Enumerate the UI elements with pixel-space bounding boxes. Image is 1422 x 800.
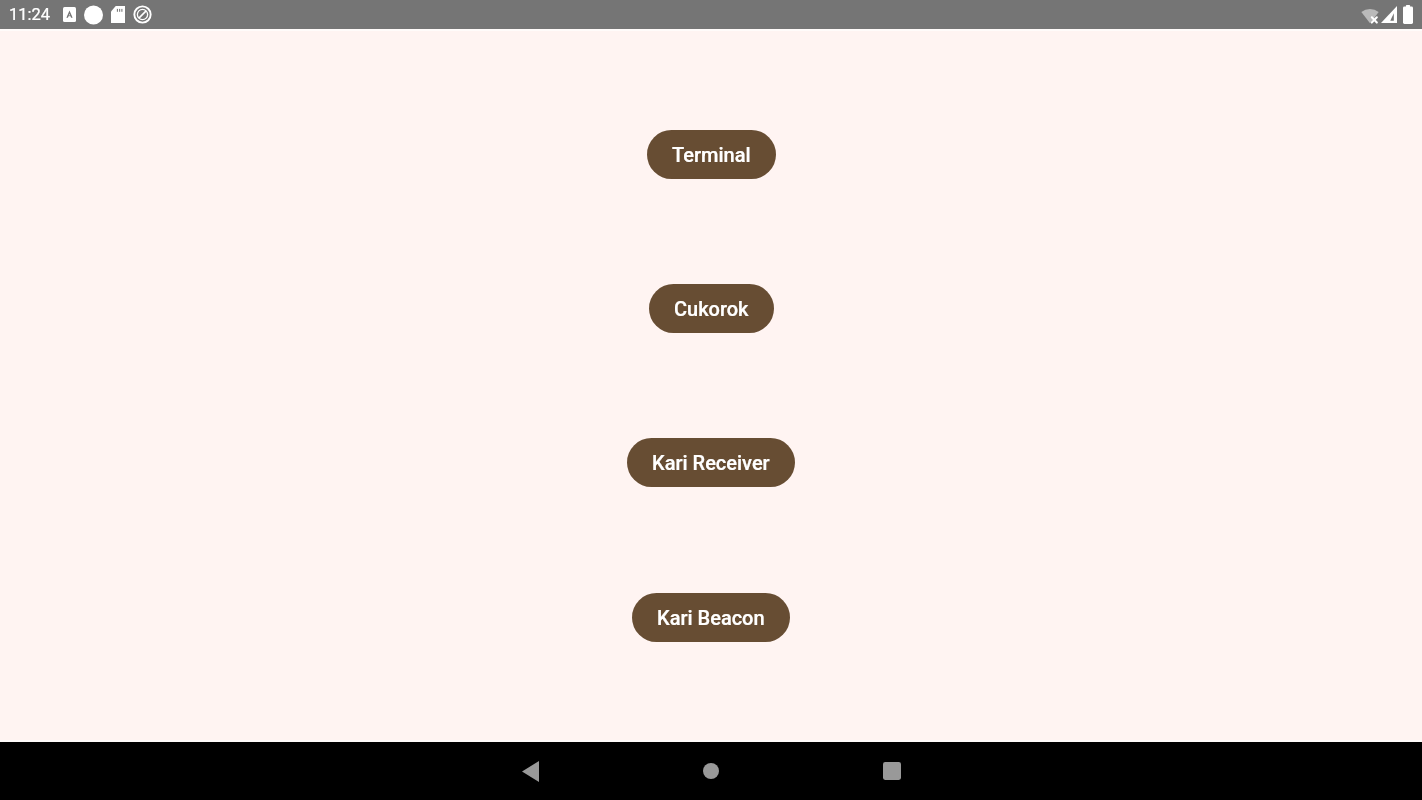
button[interactable]: Kari Beacon [632,593,790,642]
button[interactable]: Recents [868,747,916,795]
button[interactable]: Kari Receiver [627,438,795,487]
button[interactable]: Terminal [647,130,776,179]
staticText: Kari Beacon [657,606,765,629]
staticText: 11:24 [9,5,51,24]
staticText: Kari Receiver [652,451,770,474]
button[interactable]: Cukorok [649,284,774,333]
staticText: Terminal [672,143,751,166]
staticText: Cukorok [674,297,749,320]
button[interactable]: Home [687,747,735,795]
button[interactable]: Back [506,747,554,795]
